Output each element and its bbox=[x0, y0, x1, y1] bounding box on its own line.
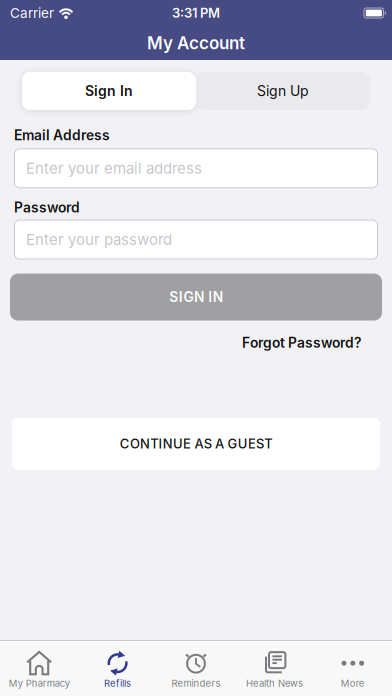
staticText: Enter your email address bbox=[26, 159, 202, 177]
button[interactable]: Health News bbox=[235, 650, 314, 689]
staticText: CONTINUE AS A GUEST bbox=[120, 436, 272, 451]
button[interactable]: Refills bbox=[78, 650, 157, 689]
button[interactable]: Sign In bbox=[22, 72, 196, 110]
staticText: Sign Up bbox=[257, 83, 309, 99]
staticText: Forgot Password? bbox=[242, 335, 362, 351]
staticText: My Account bbox=[147, 33, 245, 53]
staticText: Password bbox=[14, 199, 80, 216]
staticText: Email Address bbox=[14, 127, 110, 143]
button[interactable]: More bbox=[314, 650, 392, 689]
button[interactable]: Reminders bbox=[157, 650, 235, 689]
staticText: Carrier bbox=[10, 5, 54, 21]
staticText: Sign In bbox=[85, 83, 133, 99]
button[interactable]: SIGN IN bbox=[10, 274, 382, 321]
button[interactable]: CONTINUE AS A GUEST bbox=[12, 418, 380, 470]
staticText: More bbox=[341, 678, 365, 689]
staticText: SIGN IN bbox=[169, 289, 223, 305]
staticText: Enter your password bbox=[26, 231, 172, 248]
staticText: Health News bbox=[246, 678, 303, 689]
staticText: Reminders bbox=[171, 678, 220, 689]
button[interactable]: Enter your password bbox=[14, 220, 378, 260]
button[interactable]: Sign Up bbox=[196, 72, 370, 110]
staticText: 3:31 PM bbox=[172, 5, 220, 21]
button[interactable]: My Pharmacy bbox=[0, 650, 78, 689]
button[interactable]: Forgot Password? bbox=[242, 335, 362, 351]
button[interactable]: Enter your email address bbox=[14, 148, 378, 188]
staticText: My Pharmacy bbox=[9, 678, 70, 689]
staticText: Refills bbox=[104, 678, 131, 689]
